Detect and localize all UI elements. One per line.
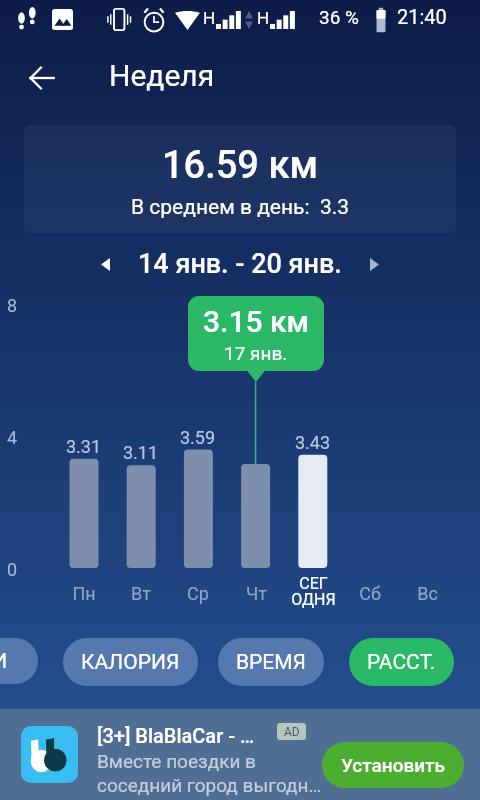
- staticText: КАЛОРИЯ: [81, 650, 180, 675]
- button[interactable]: РАССТ.: [349, 638, 454, 686]
- button[interactable]: ВРЕМЯ: [218, 638, 324, 686]
- staticText: 36 %: [319, 6, 359, 28]
- button[interactable]: Previous week: [83, 242, 127, 286]
- staticText: H: [257, 8, 270, 28]
- staticText: ВРЕМЯ: [236, 650, 306, 675]
- staticText: 21:40: [397, 5, 447, 28]
- staticText: 0: [7, 559, 18, 580]
- staticText: [3+] BlaBlaCar - …: [97, 724, 255, 747]
- button[interactable]: Back: [16, 52, 68, 104]
- button[interactable]: 16.59 км: [24, 125, 456, 233]
- button[interactable]: Next week: [352, 242, 396, 286]
- staticText: H: [203, 8, 216, 28]
- staticText: РАССТ.: [367, 650, 436, 675]
- staticText: Вс: [417, 583, 438, 604]
- staticText: В среднем в день: 3.3: [131, 195, 350, 220]
- staticText: 4: [7, 427, 18, 448]
- staticText: 17 янв.: [224, 342, 288, 364]
- button[interactable]: Установить: [322, 742, 464, 788]
- staticText: 3.15 км: [203, 304, 310, 339]
- button[interactable]: КАЛОРИЯ: [63, 638, 198, 686]
- staticText: Вт: [131, 583, 151, 604]
- staticText: ШАГИ: [0, 649, 8, 674]
- staticText: 16.59 км: [162, 143, 318, 188]
- staticText: СЕГ ОДНЯ: [291, 574, 336, 609]
- staticText: Ср: [187, 583, 209, 604]
- staticText: 3.31: [66, 436, 102, 457]
- staticText: AD: [284, 725, 300, 739]
- staticText: Чт: [246, 583, 267, 604]
- staticText: Неделя: [109, 58, 215, 93]
- staticText: 3.59: [180, 427, 216, 448]
- staticText: 14 янв. - 20 янв.: [138, 248, 342, 280]
- staticText: 3.11: [123, 442, 159, 463]
- staticText: Установить: [341, 754, 445, 776]
- staticText: Пн: [72, 583, 96, 604]
- staticText: Сб: [359, 583, 381, 604]
- staticText: 8: [7, 295, 18, 316]
- staticText: 3.43: [295, 432, 331, 453]
- button[interactable]: ШАГИ: [0, 638, 38, 684]
- staticText: Вместе поездки в соседний город выгодн…: [97, 750, 322, 797]
